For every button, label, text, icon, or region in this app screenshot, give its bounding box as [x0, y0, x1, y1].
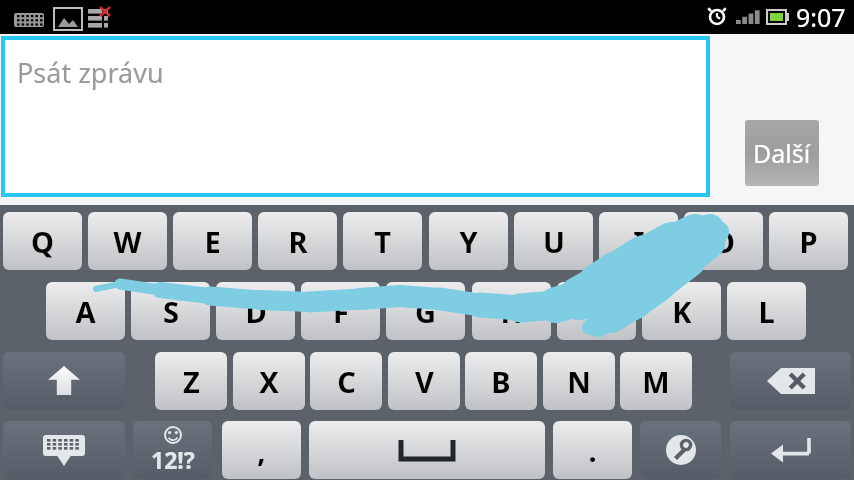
- staticText: V: [415, 362, 434, 401]
- staticText: Z: [183, 362, 200, 401]
- staticText: P: [799, 222, 818, 261]
- button[interactable]: W: [88, 212, 167, 270]
- button[interactable]: H: [472, 282, 551, 340]
- staticText: .: [588, 431, 597, 470]
- button[interactable]: X: [233, 352, 305, 410]
- button[interactable]: N: [543, 352, 615, 410]
- button[interactable]: Enter: [730, 421, 851, 479]
- button[interactable]: Hide keyboard: [3, 421, 125, 479]
- button[interactable]: L: [727, 282, 806, 340]
- staticText: H: [500, 292, 523, 331]
- staticText: S: [163, 292, 179, 331]
- staticText: Další: [753, 136, 811, 170]
- staticText: K: [672, 292, 692, 331]
- staticText: ,: [257, 431, 266, 470]
- button[interactable]: I: [599, 212, 678, 270]
- button[interactable]: Space: [309, 421, 545, 479]
- button[interactable]: K: [642, 282, 721, 340]
- staticText: R: [288, 222, 308, 261]
- button[interactable]: Q: [3, 212, 82, 270]
- staticText: T: [374, 222, 391, 261]
- button[interactable]: S: [131, 282, 210, 340]
- staticText: E: [204, 222, 221, 261]
- button[interactable]: Další: [745, 120, 819, 186]
- staticText: D: [245, 292, 267, 331]
- staticText: W: [113, 222, 142, 261]
- button[interactable]: Delete: [730, 352, 851, 410]
- button[interactable]: O: [684, 212, 763, 270]
- button[interactable]: Psát zprávu: [3, 38, 708, 195]
- button[interactable]: J: [557, 282, 636, 340]
- button[interactable]: V: [388, 352, 460, 410]
- button[interactable]: Y: [429, 212, 508, 270]
- staticText: Y: [459, 222, 478, 261]
- button[interactable]: T: [343, 212, 422, 270]
- button[interactable]: B: [465, 352, 537, 410]
- button[interactable]: Settings: [640, 421, 721, 479]
- staticText: M: [642, 362, 670, 401]
- staticText: B: [491, 362, 511, 401]
- button[interactable]: 12!?: [133, 421, 212, 479]
- staticText: F: [333, 292, 349, 331]
- staticText: G: [415, 292, 436, 331]
- button[interactable]: G: [386, 282, 465, 340]
- button[interactable]: C: [310, 352, 382, 410]
- button[interactable]: F: [301, 282, 380, 340]
- button[interactable]: Shift: [3, 352, 125, 410]
- button[interactable]: U: [514, 212, 593, 270]
- button[interactable]: M: [620, 352, 692, 410]
- staticText: N: [567, 362, 591, 401]
- button[interactable]: E: [173, 212, 252, 270]
- button[interactable]: A: [46, 282, 125, 340]
- button[interactable]: D: [216, 282, 295, 340]
- button[interactable]: P: [769, 212, 848, 270]
- staticText: A: [75, 292, 96, 331]
- staticText: X: [259, 362, 279, 401]
- staticText: O: [712, 222, 735, 261]
- button[interactable]: ,: [222, 421, 301, 479]
- staticText: L: [758, 292, 775, 331]
- staticText: C: [337, 362, 356, 401]
- staticText: U: [543, 222, 565, 261]
- button[interactable]: R: [258, 212, 337, 270]
- staticText: 9:07: [796, 0, 846, 34]
- staticText: I: [633, 222, 645, 261]
- button[interactable]: Z: [155, 352, 227, 410]
- button[interactable]: .: [553, 421, 632, 479]
- staticText: 12!?: [151, 444, 195, 475]
- staticText: Psát zprávu: [17, 54, 164, 91]
- staticText: Q: [31, 222, 54, 261]
